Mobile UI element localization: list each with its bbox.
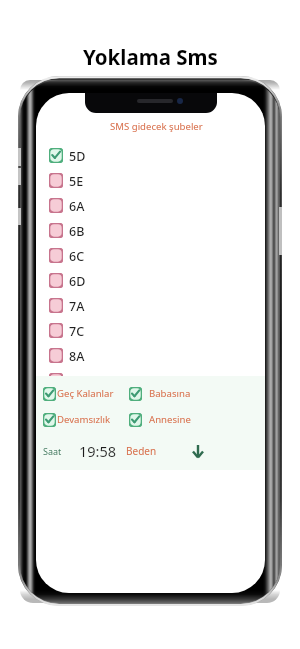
- staticText: Babasına: [149, 387, 191, 400]
- staticText: Saat: [43, 445, 62, 457]
- button[interactable]: 5E: [36, 168, 265, 193]
- button[interactable]: 5D: [36, 143, 265, 168]
- staticText: Annesine: [149, 413, 191, 426]
- staticText: Beden: [126, 444, 157, 458]
- button[interactable]: 8A: [36, 343, 265, 368]
- button[interactable]: 8B: [36, 368, 265, 393]
- staticText: Geç Kalanlar: [57, 387, 114, 400]
- button[interactable]: 7C: [36, 318, 265, 343]
- staticText: Devamsızlık: [57, 413, 111, 426]
- button[interactable]: Devamsızlık: [43, 413, 111, 427]
- button[interactable]: Babasına: [129, 387, 191, 401]
- staticText: 7C: [69, 323, 85, 340]
- button[interactable]: Aşağı: [189, 442, 207, 460]
- staticText: SMS gidecek şubeler: [110, 120, 203, 133]
- staticText: 8C: [69, 398, 85, 415]
- staticText: 5D: [69, 148, 86, 165]
- button[interactable]: Geç Kalanlar: [43, 387, 114, 401]
- staticText: 5E: [69, 173, 84, 190]
- button[interactable]: 6C: [36, 243, 265, 268]
- button[interactable]: 8C: [36, 393, 265, 418]
- staticText: 19:58: [79, 441, 117, 461]
- staticText: 7A: [69, 298, 85, 315]
- button[interactable]: Annesine: [129, 413, 191, 427]
- button[interactable]: 7A: [36, 293, 265, 318]
- staticText: Yoklama Sms: [83, 43, 218, 71]
- staticText: 6D: [69, 273, 86, 290]
- button[interactable]: 6D: [36, 268, 265, 293]
- button[interactable]: 6A: [36, 193, 265, 218]
- button[interactable]: 6B: [36, 218, 265, 243]
- staticText: 8A: [69, 348, 85, 365]
- staticText: 6C: [69, 248, 85, 265]
- staticText: 8B: [69, 373, 85, 390]
- staticText: 6B: [69, 223, 85, 240]
- staticText: 6A: [69, 198, 85, 215]
